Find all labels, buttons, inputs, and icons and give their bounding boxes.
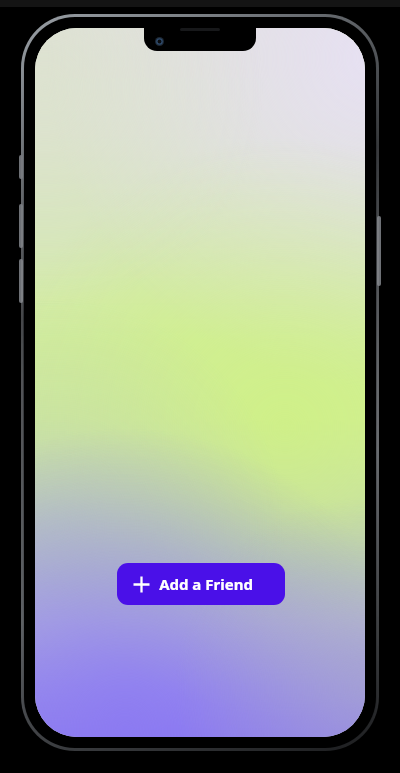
staticText: Add a Friend — [159, 574, 253, 594]
button[interactable]: Add a Friend — [117, 563, 285, 605]
